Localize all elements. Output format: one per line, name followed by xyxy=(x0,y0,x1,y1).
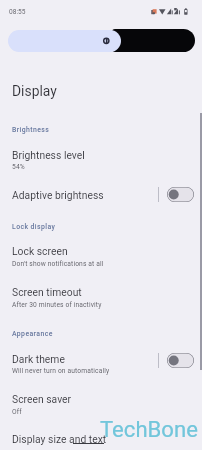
staticText: Display xyxy=(12,83,57,99)
staticText: Screen timeout xyxy=(12,286,82,298)
staticText: Lock display xyxy=(12,223,56,231)
button[interactable]: Adaptive brightness toggle xyxy=(167,187,194,202)
staticText: Lock screen xyxy=(12,245,68,257)
button[interactable]: Brightness level xyxy=(0,142,202,176)
button[interactable]: Search settings xyxy=(8,30,121,52)
staticText: 08:55 xyxy=(9,8,26,16)
staticText: After 30 minutes of inactivity xyxy=(12,301,102,309)
button[interactable]: Screen saver xyxy=(0,386,202,420)
staticText: Brightness level xyxy=(12,149,85,161)
button[interactable]: Dark theme xyxy=(0,346,202,380)
staticText: Will never turn on automatically xyxy=(12,367,110,375)
staticText: Brightness xyxy=(12,126,50,134)
staticText: Appearance xyxy=(12,330,53,338)
button[interactable]: Lock screen xyxy=(0,238,202,272)
staticText: Display size and text xyxy=(12,433,107,445)
staticText: Adaptive brightness xyxy=(12,189,104,201)
staticText: TechBone xyxy=(100,416,198,442)
button[interactable]: Screen timeout xyxy=(0,279,202,313)
staticText: Screen saver xyxy=(12,393,72,405)
staticText: Off xyxy=(12,408,22,416)
button[interactable]: Dark theme toggle xyxy=(167,353,194,368)
other: Status icons xyxy=(148,7,190,17)
button[interactable]: Adaptive brightness xyxy=(0,180,202,209)
button[interactable]: Display size and text xyxy=(0,427,202,450)
staticText: Dark theme xyxy=(12,353,65,365)
staticText: Don't show notifications at all xyxy=(12,260,104,268)
staticText: 54% xyxy=(12,163,25,171)
